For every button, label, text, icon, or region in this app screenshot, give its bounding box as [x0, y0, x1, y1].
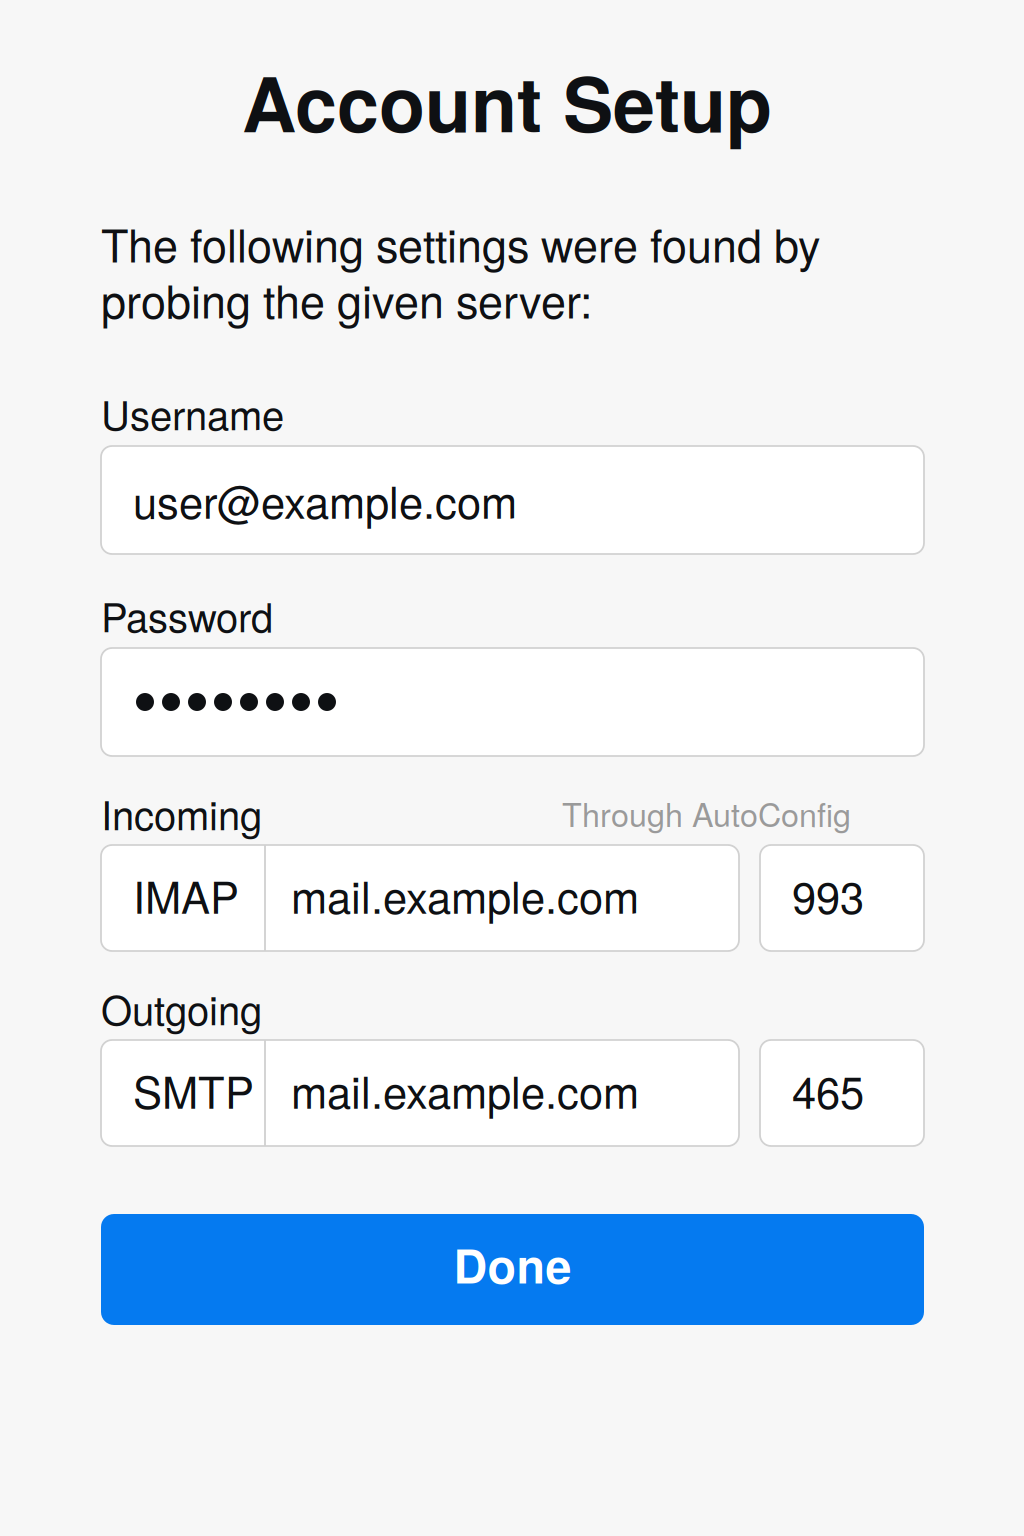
staticText: Incoming: [101, 784, 262, 842]
staticText: mail.example.com: [291, 1059, 639, 1121]
staticText: The following settings were found by: [101, 211, 820, 275]
staticText: 465: [792, 1059, 864, 1121]
staticText: Outgoing: [101, 979, 262, 1037]
staticText: Password: [101, 586, 273, 644]
staticText: user@example.com: [133, 469, 517, 531]
button[interactable]: user@example.com: [101, 446, 924, 554]
staticText: IMAP: [133, 864, 239, 926]
button[interactable]: Done: [101, 1214, 924, 1325]
button[interactable]: 465: [760, 1040, 924, 1146]
staticText: Through AutoConfig: [562, 790, 851, 836]
button[interactable]: Password: [101, 648, 924, 756]
staticText: probing the given server:: [101, 267, 592, 331]
staticText: mail.example.com: [291, 864, 639, 926]
staticText: Username: [101, 384, 284, 442]
staticText: SMTP: [133, 1059, 254, 1121]
button[interactable]: 993: [760, 845, 924, 951]
button[interactable]: IMAP: [101, 845, 739, 951]
button[interactable]: SMTP: [101, 1040, 739, 1146]
staticText: Account Setup: [242, 48, 772, 155]
staticText: Done: [453, 1231, 571, 1298]
staticText: 993: [792, 864, 864, 926]
